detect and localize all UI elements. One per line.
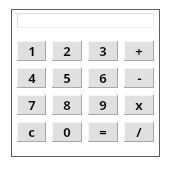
staticText: + [135, 42, 143, 60]
staticText: 5 [63, 69, 71, 87]
button[interactable]: 7 [17, 95, 46, 115]
staticText: - [137, 69, 142, 87]
button[interactable]: Minus [124, 68, 154, 88]
button[interactable]: 9 [88, 95, 118, 115]
button[interactable]: 0 [52, 122, 82, 142]
button[interactable]: Multiply [124, 95, 154, 115]
button[interactable]: 6 [88, 68, 118, 88]
staticText: 4 [28, 69, 36, 87]
button[interactable]: Equals [88, 122, 118, 142]
button[interactable]: 3 [88, 41, 118, 61]
button[interactable]: 5 [52, 68, 82, 88]
staticText: 7 [28, 96, 36, 114]
staticText: / [136, 123, 142, 141]
staticText: 2 [63, 42, 71, 60]
staticText: 1 [28, 42, 36, 60]
staticText: c [28, 123, 35, 141]
staticText: 6 [99, 69, 107, 87]
button[interactable]: Divide [124, 122, 154, 142]
staticText: = [99, 123, 107, 141]
button[interactable]: Plus [124, 41, 154, 61]
staticText: 9 [99, 96, 107, 114]
button[interactable]: Clear [17, 122, 46, 142]
button[interactable]: 4 [17, 68, 46, 88]
staticText: 8 [63, 96, 71, 114]
staticText: 0 [63, 123, 71, 141]
staticText: 3 [99, 42, 107, 60]
button[interactable]: 8 [52, 95, 82, 115]
button[interactable]: 2 [52, 41, 82, 61]
button[interactable]: 1 [17, 41, 46, 61]
staticText: x [135, 96, 143, 114]
